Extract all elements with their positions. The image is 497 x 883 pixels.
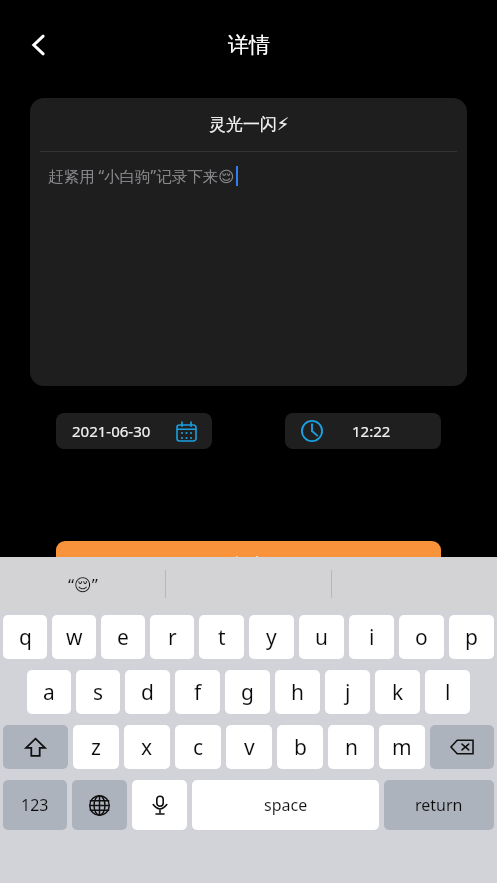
button[interactable]: c [175, 725, 221, 769]
button[interactable]: “😌” [0, 557, 165, 611]
button[interactable]: w [52, 615, 96, 659]
button[interactable]: l [425, 670, 470, 714]
staticText: y [266, 623, 277, 652]
button[interactable]: 保存 [56, 541, 441, 587]
staticText: e [117, 623, 129, 652]
staticText: u [315, 623, 328, 652]
button[interactable]: return [384, 780, 494, 830]
staticText: b [294, 733, 307, 762]
staticText: 详情 [228, 32, 270, 58]
button[interactable]: m [379, 725, 425, 769]
staticText: t [218, 623, 226, 652]
button[interactable]: d [125, 670, 170, 714]
button[interactable]: Back [16, 22, 62, 68]
staticText: q [19, 623, 32, 652]
button[interactable]: t [199, 615, 244, 659]
staticText: k [392, 678, 404, 707]
staticText: “😌” [68, 573, 98, 596]
staticText: f [194, 678, 202, 707]
staticText: g [241, 678, 254, 707]
staticText: s [93, 678, 104, 707]
staticText: j [345, 678, 351, 707]
button[interactable]: Backspace [430, 725, 494, 769]
staticText: h [291, 678, 304, 707]
button[interactable]: z [73, 725, 119, 769]
staticText: 123 [21, 794, 49, 816]
button[interactable]: q [3, 615, 47, 659]
button[interactable]: v [226, 725, 272, 769]
button[interactable]: space [192, 780, 379, 830]
button[interactable]: j [325, 670, 370, 714]
staticText: i [369, 623, 375, 652]
staticText: r [168, 623, 177, 652]
button[interactable]: a [27, 670, 71, 714]
button[interactable]: s [76, 670, 120, 714]
button[interactable]: f [175, 670, 220, 714]
staticText: z [91, 733, 101, 762]
button[interactable]: i [349, 615, 394, 659]
staticText: return [415, 794, 463, 816]
staticText: m [392, 733, 412, 762]
staticText: x [141, 733, 153, 762]
button[interactable]: e [101, 615, 145, 659]
staticText: 灵光一闪⚡ [209, 114, 289, 135]
staticText: d [141, 678, 154, 707]
staticText: w [66, 623, 83, 652]
button[interactable]: 123 [3, 780, 67, 830]
button[interactable]: Change keyboard language [72, 780, 127, 830]
staticText: 12:22 [352, 421, 391, 441]
staticText: space [264, 794, 308, 816]
staticText: 2021-06-30 [72, 421, 151, 441]
staticText: 赶紧用 “小白驹”记录下来😌 [48, 165, 235, 186]
button[interactable]: u [299, 615, 344, 659]
button[interactable]: o [399, 615, 444, 659]
button[interactable]: Shift [3, 725, 68, 769]
button[interactable]: p [449, 615, 494, 659]
button[interactable]: n [328, 725, 374, 769]
staticText: 保存 [232, 554, 266, 575]
button[interactable]: r [150, 615, 194, 659]
button[interactable]: Pick time [285, 413, 441, 449]
button[interactable]: Voice input [132, 780, 187, 830]
staticText: a [43, 678, 55, 707]
button[interactable]: b [277, 725, 323, 769]
button[interactable]: h [275, 670, 320, 714]
button[interactable]: 灵光一闪⚡ [30, 98, 467, 386]
staticText: o [415, 623, 428, 652]
staticText: c [193, 733, 204, 762]
button[interactable]: y [249, 615, 294, 659]
button[interactable]: x [124, 725, 170, 769]
staticText: p [465, 623, 478, 652]
staticText: l [445, 678, 451, 707]
button[interactable]: Pick date [56, 413, 212, 449]
staticText: v [244, 733, 255, 762]
button[interactable]: k [375, 670, 420, 714]
button[interactable]: g [225, 670, 270, 714]
staticText: n [345, 733, 358, 762]
